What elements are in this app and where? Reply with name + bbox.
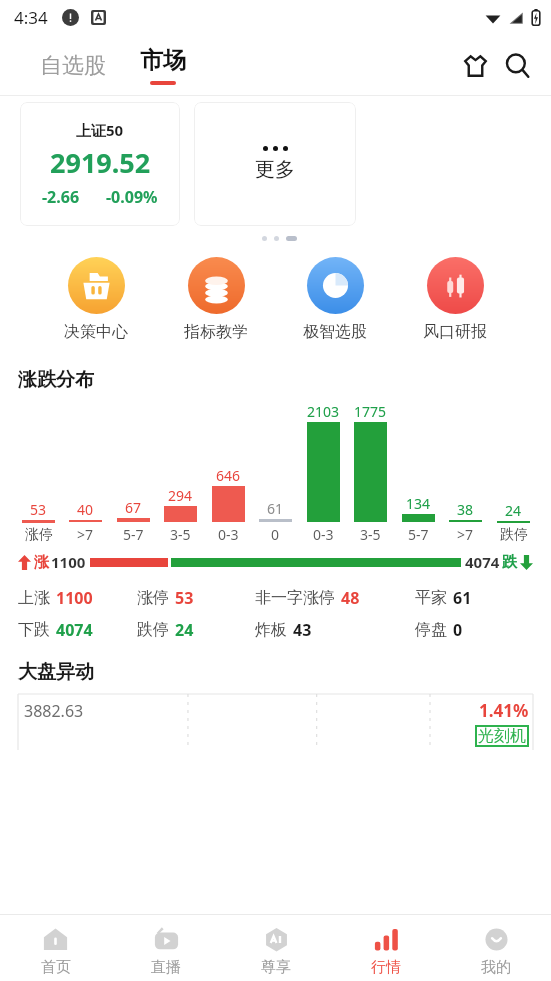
button[interactable]: 直播: [111, 915, 221, 981]
staticText: 涨: [34, 553, 49, 572]
staticText: 646: [216, 466, 241, 485]
staticText: 0-3: [218, 525, 239, 544]
staticText: 决策中心: [64, 322, 128, 342]
staticText: 0-3: [313, 525, 334, 544]
staticText: 我的: [481, 958, 511, 977]
staticText: 涨跌分布: [18, 368, 94, 392]
staticText: 跌: [502, 553, 517, 572]
button[interactable]: 指标教学: [180, 253, 252, 346]
staticText: 3-5: [360, 525, 381, 544]
staticText: 光刻机: [478, 726, 526, 746]
staticText: 首页: [41, 958, 71, 977]
staticText: 53: [175, 587, 194, 609]
staticText: 61: [453, 587, 472, 609]
staticText: 3882.63: [24, 700, 84, 722]
staticText: 0: [453, 619, 463, 641]
staticText: 自选股: [40, 52, 106, 80]
button[interactable]: 尊享: [221, 915, 331, 981]
button[interactable]: 行情: [331, 915, 441, 981]
staticText: 平家: [415, 588, 447, 608]
staticText: 3-5: [170, 525, 191, 544]
button[interactable]: 市场: [136, 44, 190, 87]
button[interactable]: Search: [499, 47, 535, 83]
staticText: 24: [505, 501, 522, 520]
staticText: 风口研报: [423, 322, 487, 342]
staticText: 行情: [371, 958, 401, 977]
staticText: 53: [30, 500, 47, 519]
staticText: 38: [457, 500, 474, 519]
staticText: -2.66: [42, 186, 80, 208]
staticText: 0: [271, 525, 280, 544]
staticText: 67: [125, 498, 142, 517]
staticText: 上证50: [76, 120, 124, 140]
staticText: >7: [457, 525, 474, 544]
staticText: 61: [267, 499, 284, 518]
staticText: 涨停: [137, 588, 169, 608]
staticText: 极智选股: [303, 322, 367, 342]
staticText: 134: [406, 494, 431, 513]
staticText: 2919.52: [50, 144, 151, 181]
staticText: 跌停: [500, 526, 528, 544]
staticText: 1100: [51, 552, 86, 572]
staticText: 1.41%: [479, 699, 529, 722]
staticText: 大盘异动: [18, 660, 94, 684]
staticText: 1775: [354, 402, 387, 421]
staticText: 指标教学: [184, 322, 248, 342]
staticText: 43: [293, 619, 312, 641]
button[interactable]: 首页: [0, 915, 111, 981]
staticText: 市场: [140, 46, 186, 75]
button[interactable]: 上证50: [20, 102, 180, 226]
staticText: 跌停: [137, 620, 169, 640]
staticText: 2103: [307, 402, 340, 421]
staticText: 直播: [151, 958, 181, 977]
staticText: 尊享: [261, 958, 291, 977]
button[interactable]: Home: [457, 47, 493, 83]
button[interactable]: 决策中心: [60, 253, 132, 346]
staticText: 5-7: [123, 525, 144, 544]
staticText: 上涨: [18, 588, 50, 608]
staticText: 4:34: [14, 6, 48, 29]
staticText: 4074: [465, 552, 500, 572]
staticText: 非一字涨停: [255, 588, 335, 608]
staticText: 更多: [255, 157, 295, 182]
staticText: 48: [341, 587, 360, 609]
staticText: 停盘: [415, 620, 447, 640]
staticText: 炸板: [255, 620, 287, 640]
staticText: >7: [77, 525, 94, 544]
staticText: -0.09%: [106, 186, 158, 208]
button[interactable]: 3882.63: [18, 694, 533, 750]
button[interactable]: 更多: [194, 102, 356, 226]
staticText: 4074: [56, 619, 93, 641]
button[interactable]: 风口研报: [419, 253, 491, 346]
button[interactable]: 我的: [441, 915, 551, 981]
staticText: 40: [77, 500, 94, 519]
staticText: 5-7: [408, 525, 429, 544]
staticText: 1100: [56, 587, 93, 609]
staticText: 涨停: [25, 526, 53, 544]
button[interactable]: 自选股: [36, 46, 110, 86]
staticText: 294: [168, 486, 193, 505]
button[interactable]: 极智选股: [299, 253, 371, 346]
staticText: 下跌: [18, 620, 50, 640]
staticText: 24: [175, 619, 194, 641]
